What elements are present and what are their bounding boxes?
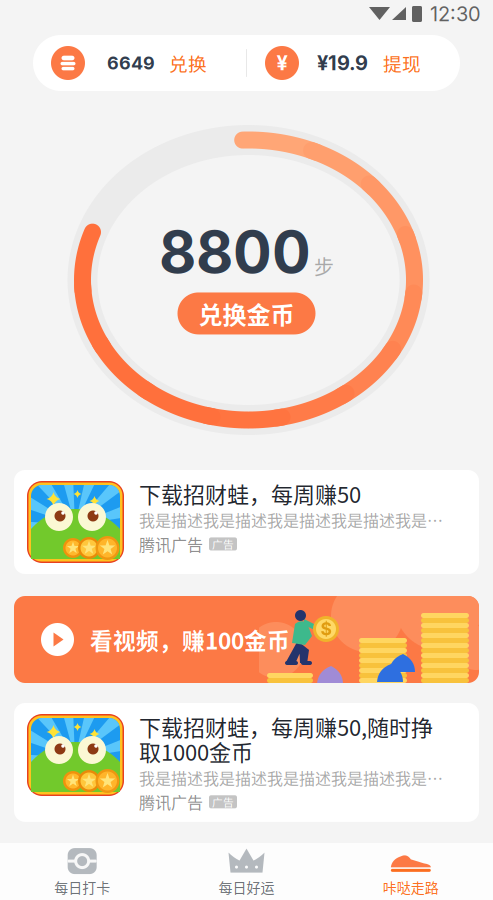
button[interactable]: ¥	[247, 35, 460, 91]
button[interactable]: 兑换金币	[177, 292, 315, 334]
staticText: 6649	[107, 54, 155, 72]
button[interactable]: 每日打卡	[0, 843, 164, 900]
staticText: 看视频，赚100金币	[90, 627, 290, 652]
staticText: 咔哒走路	[383, 879, 439, 895]
staticText: 腾讯广告	[139, 793, 203, 811]
button[interactable]: 下载招财蛙，每周赚50	[14, 470, 479, 574]
staticText: 下载招财蛙，每周赚50,随时挣取1000金币	[139, 714, 433, 764]
staticText: 我是描述我是描述我是描述我是描述我是…	[139, 769, 443, 787]
staticText: ¥	[276, 53, 287, 73]
staticText: 提现	[383, 52, 421, 74]
staticText: 8800	[159, 224, 311, 280]
staticText: $	[320, 620, 331, 638]
button[interactable]: 每日好运	[164, 843, 329, 900]
button[interactable]: 6649	[33, 35, 246, 91]
staticText: 12:30	[430, 4, 481, 24]
staticText: 广告	[212, 796, 234, 808]
staticText: 兑换金币	[198, 300, 294, 327]
staticText: 腾讯广告	[139, 535, 203, 553]
staticText: 兑换	[169, 52, 207, 74]
staticText: 下载招财蛙，每周赚50	[139, 481, 361, 506]
staticText: ¥19.9	[317, 53, 368, 73]
button[interactable]: $	[14, 596, 479, 683]
button[interactable]: 下载招财蛙，每周赚50,随时挣取1000金币	[14, 703, 479, 822]
staticText: 广告	[212, 538, 234, 550]
staticText: 每日好运	[218, 879, 274, 895]
button[interactable]: 咔哒走路	[329, 843, 493, 900]
staticText: 我是描述我是描述我是描述我是描述我是…	[139, 511, 443, 529]
staticText: 每日打卡	[54, 879, 110, 895]
staticText: 步	[314, 255, 334, 277]
